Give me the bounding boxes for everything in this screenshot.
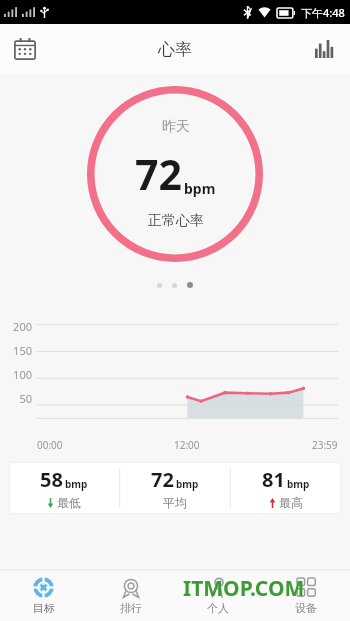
staticText: 50 [0,391,32,406]
staticText: 12:00 [174,438,200,452]
staticText: 正常心率 [148,212,204,230]
staticText: 72 [135,146,182,202]
staticText: 58 [40,466,63,493]
staticText: 心率 [158,39,192,60]
button[interactable]: 81 [230,462,341,514]
button[interactable]: Calendar [0,24,50,74]
button[interactable]: 设备 [262,570,350,621]
staticText: 最高 [279,495,303,510]
staticText: 个人 [207,601,229,615]
staticText: 昨天 [162,118,190,136]
button[interactable]: 58 [9,462,119,514]
staticText: 最低 [57,495,81,510]
staticText: 排行 [120,601,142,615]
staticText: 100 [0,367,32,382]
staticText: bmp [65,477,88,491]
staticText: 23:59 [312,438,338,452]
staticText: 150 [0,343,32,358]
button[interactable]: 目标 [0,570,87,621]
staticText: 下午4:48 [301,5,345,20]
button[interactable]: 个人 [174,570,262,621]
staticText: 目标 [33,601,55,615]
staticText: 200 [0,319,32,334]
staticText: 平均 [163,495,187,510]
staticText: 72 [151,466,174,493]
staticText: ITMOP.COM [183,574,305,603]
staticText: 00:00 [37,438,63,452]
button[interactable]: 排行 [87,570,174,621]
button[interactable]: 72 [119,462,230,514]
button[interactable]: Statistics [300,24,350,74]
staticText: 81 [262,466,285,493]
staticText: 设备 [295,601,317,615]
staticText: bpm [184,179,216,198]
staticText: bmp [176,477,199,491]
staticText: bmp [287,477,310,491]
